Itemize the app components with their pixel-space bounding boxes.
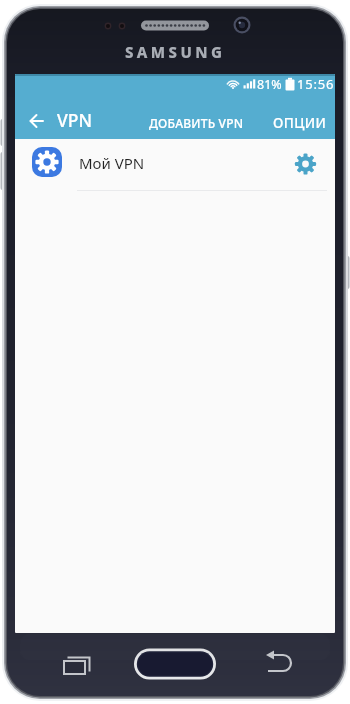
button[interactable] bbox=[134, 646, 216, 681]
button[interactable]: ОПЦИИ bbox=[267, 111, 333, 135]
staticText: 81% bbox=[257, 76, 282, 93]
button[interactable]: Мой VPN bbox=[15, 139, 335, 190]
button[interactable]: ДОБАВИТЬ VPN bbox=[136, 111, 256, 135]
staticText: VPN bbox=[57, 108, 93, 132]
staticText: ДОБАВИТЬ VPN bbox=[149, 115, 244, 131]
staticText: ОПЦИИ bbox=[273, 114, 327, 132]
staticText: Мой VPN bbox=[79, 153, 145, 173]
button[interactable] bbox=[56, 648, 94, 680]
button[interactable] bbox=[258, 648, 296, 680]
button[interactable] bbox=[21, 105, 53, 137]
staticText: 15:56 bbox=[297, 75, 335, 93]
staticText: SAMSUNG bbox=[125, 42, 226, 62]
button[interactable] bbox=[290, 149, 320, 179]
